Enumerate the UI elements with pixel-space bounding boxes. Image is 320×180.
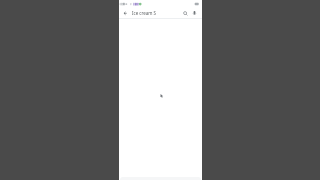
button[interactable]: Ice cream S (132, 8, 181, 18)
button[interactable]: Search (181, 9, 189, 17)
staticText: Ice cream S (132, 10, 156, 16)
button[interactable]: Voice search (190, 9, 198, 17)
button[interactable]: Back (121, 9, 130, 18)
